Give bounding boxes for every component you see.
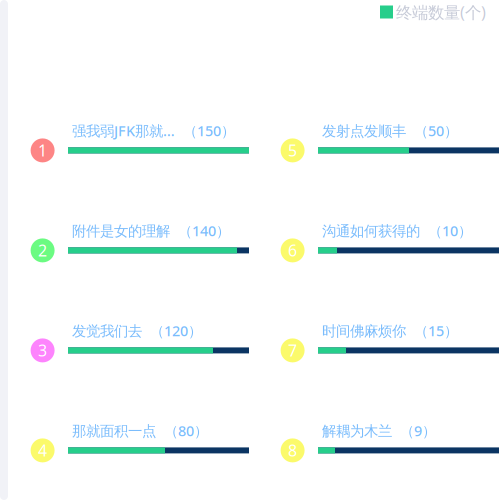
staticText: 终端数量(个) [396, 1, 486, 23]
button[interactable]: 终端数量(个) 图例 [380, 1, 496, 23]
staticText: 4 [38, 440, 47, 461]
staticText: 3 [38, 340, 47, 361]
button[interactable]: 那就面积一点 （80） [31, 421, 249, 462]
button[interactable]: 解耦为木兰 （9） [281, 421, 499, 462]
button[interactable]: 发射点发顺丰 （50） [281, 121, 499, 162]
staticText: 那就面积一点 （80） [72, 421, 208, 440]
button[interactable]: 时间佛麻烦你 （15） [281, 321, 499, 362]
staticText: 附件是女的理解 （140） [72, 221, 230, 240]
staticText: 1 [38, 140, 47, 161]
staticText: 发觉我们去 （120） [72, 321, 202, 340]
staticText: 发射点发顺丰 （50） [322, 121, 458, 140]
staticText: 2 [38, 240, 47, 261]
staticText: 解耦为木兰 （9） [322, 421, 436, 440]
button[interactable]: 沟通如何获得的 （10） [281, 221, 499, 262]
staticText: 沟通如何获得的 （10） [322, 221, 472, 240]
button[interactable]: 强我弱JFK那就… （150） [31, 121, 249, 162]
staticText: 5 [288, 140, 297, 161]
staticText: 7 [288, 340, 297, 361]
staticText: 时间佛麻烦你 （15） [322, 321, 458, 340]
staticText: 强我弱JFK那就… （150） [72, 121, 235, 140]
staticText: 6 [288, 240, 297, 261]
button[interactable]: 发觉我们去 （120） [31, 321, 249, 362]
staticText: 8 [288, 440, 297, 461]
button[interactable]: 附件是女的理解 （140） [31, 221, 249, 262]
